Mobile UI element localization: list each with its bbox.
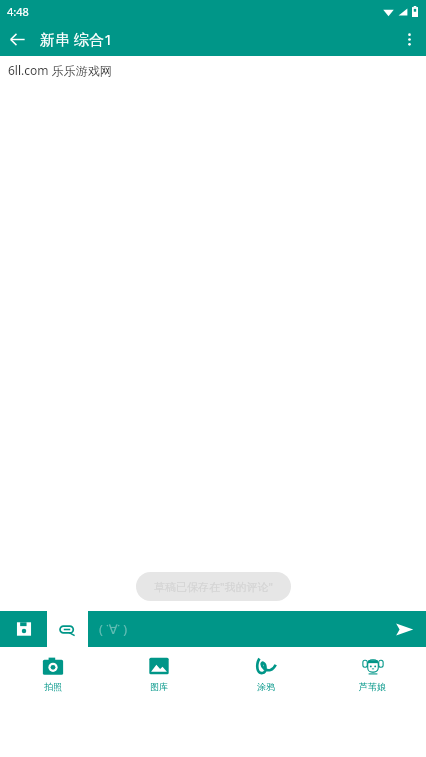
staticText: 草稿已保存在"我的评论"	[154, 579, 273, 594]
button[interactable]: 图库	[106, 647, 212, 699]
staticText: 4:48	[7, 4, 29, 19]
button[interactable]: More options	[392, 22, 426, 56]
staticText: 涂鸦	[257, 681, 275, 692]
button[interactable]: 芦苇娘	[319, 647, 426, 699]
button[interactable]: 涂鸦	[212, 647, 319, 699]
button[interactable]: Back	[0, 22, 34, 56]
staticText: ( ˙∀˙ )	[99, 620, 128, 638]
staticText: 6ll.com 乐乐游戏网	[8, 62, 112, 78]
staticText: 拍照	[44, 681, 62, 692]
staticText: 新串 综合1	[40, 29, 113, 49]
button[interactable]: Save draft	[0, 611, 47, 647]
button[interactable]: Attach	[47, 611, 88, 647]
button[interactable]: 拍照	[0, 647, 106, 699]
staticText: 图库	[150, 681, 168, 692]
staticText: 芦苇娘	[359, 681, 386, 692]
button[interactable]: Send	[382, 611, 426, 647]
